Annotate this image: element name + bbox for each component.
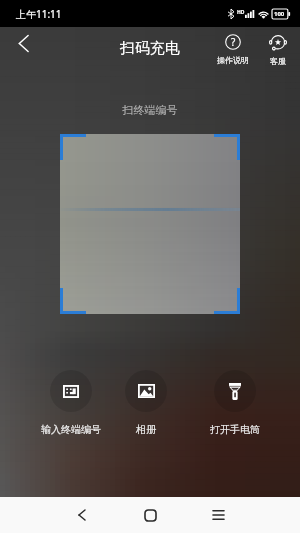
button[interactable]: 输入终端编号 [31,370,111,436]
staticText: 输入终端编号 [41,423,101,436]
staticText: ? [231,35,236,49]
button[interactable]: Recent apps [193,497,243,533]
button[interactable]: Home [125,497,175,533]
button[interactable]: Back [57,497,107,533]
button[interactable]: 相册 [106,370,186,436]
staticText: 操作说明 [217,55,249,65]
button[interactable]: ? [215,34,251,65]
staticText: 客服 [270,56,286,66]
button[interactable]: 客服 [260,34,296,66]
staticText: HD [237,9,245,16]
staticText: 扫码充电 [0,39,300,58]
staticText: 扫终端编号 [0,103,300,117]
staticText: 打开手电筒 [210,423,260,436]
button[interactable]: 打开手电筒 [195,370,275,436]
staticText: 100 [274,10,285,18]
button[interactable]: Back [6,26,40,60]
staticText: 上午11:11 [16,7,62,21]
staticText: 相册 [136,423,156,436]
